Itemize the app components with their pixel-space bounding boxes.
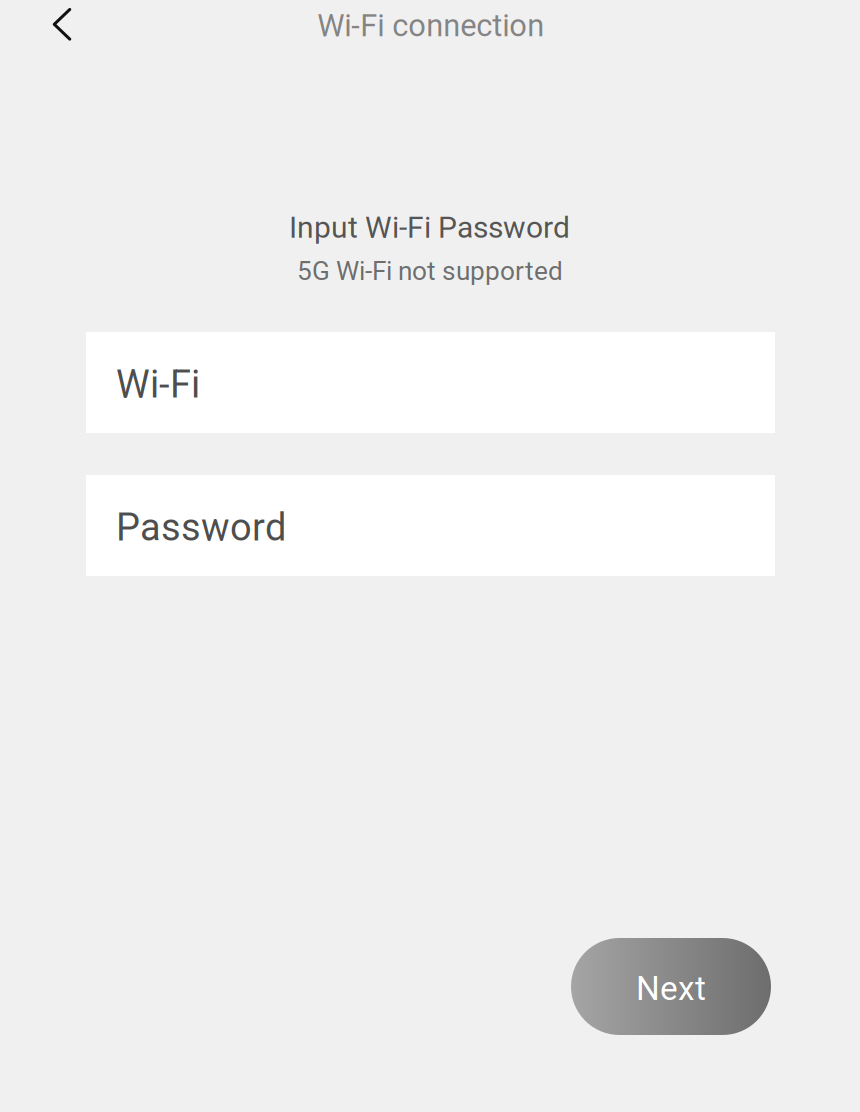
staticText: Password [116,505,286,550]
button[interactable]: Next [571,938,771,1035]
button[interactable]: Wi-Fi [86,332,775,433]
button[interactable]: Back [33,0,91,48]
staticText: Wi-Fi connection [317,8,544,44]
staticText: 5G Wi-Fi not supported [297,256,563,286]
staticText: Wi-Fi [116,362,200,407]
staticText: Input Wi-Fi Password [289,210,570,245]
button[interactable]: Password [86,475,775,576]
staticText: Next [636,969,706,1008]
